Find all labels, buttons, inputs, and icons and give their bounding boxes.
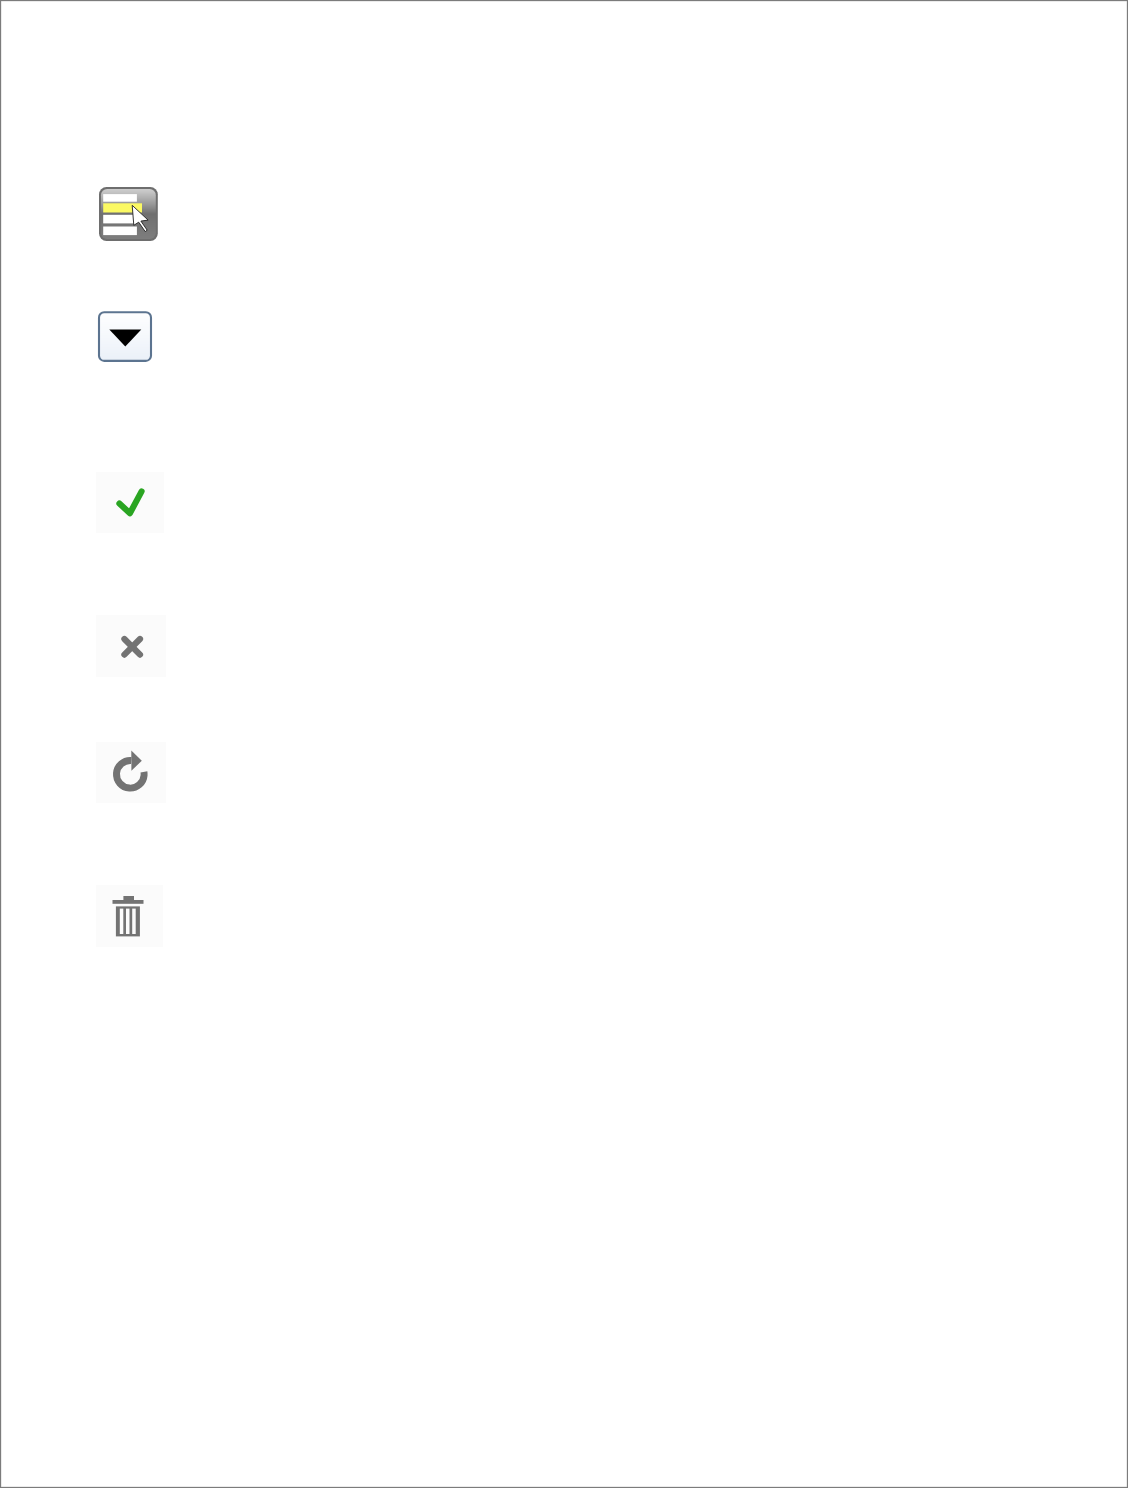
button[interactable]: Refresh [96, 742, 166, 803]
button[interactable]: Accept [96, 472, 164, 533]
button[interactable]: Open drop-down [99, 312, 151, 361]
button[interactable]: Cancel [96, 615, 166, 677]
button[interactable]: Delete [96, 885, 163, 947]
button[interactable]: Select row [99, 187, 158, 241]
